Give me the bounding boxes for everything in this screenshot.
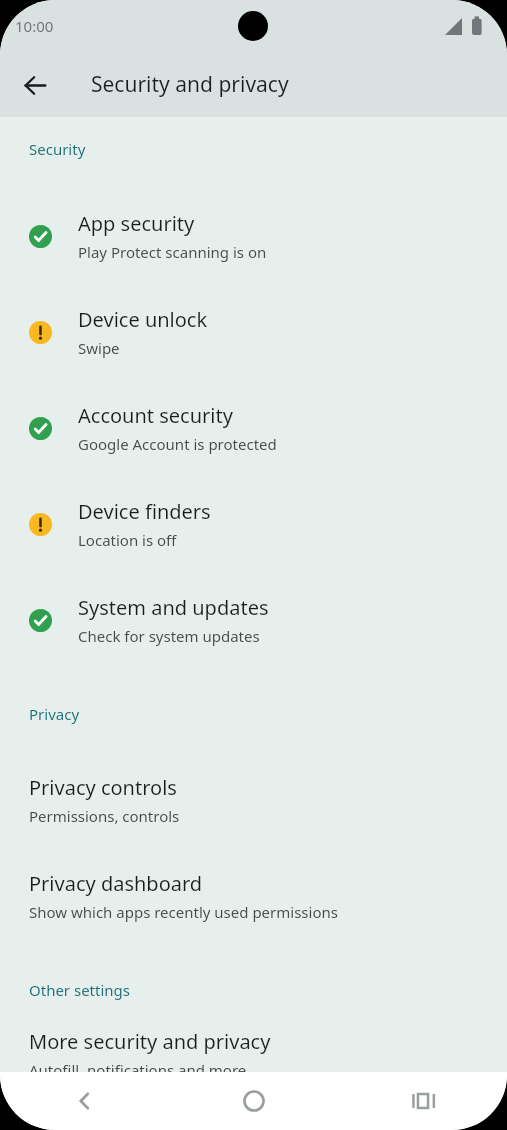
staticText: Location is off [78, 530, 177, 550]
button[interactable]: Device finders [0, 476, 507, 572]
staticText: Check for system updates [78, 626, 260, 646]
staticText: Show which apps recently used permission… [29, 902, 338, 922]
staticText: Privacy controls [29, 774, 177, 801]
staticText: Autofill, notifications and more [29, 1060, 247, 1072]
staticText: Play Protect scanning is on [78, 242, 267, 262]
button[interactable]: Back [58, 1074, 112, 1128]
staticText: Device unlock [78, 306, 208, 333]
staticText: Swipe [78, 338, 120, 358]
staticText: Permissions, controls [29, 806, 180, 826]
staticText: 10:00 [15, 16, 54, 36]
staticText: System and updates [78, 594, 269, 621]
staticText: App security [78, 210, 195, 237]
button[interactable]: Privacy controls [0, 752, 507, 848]
button[interactable]: Home [227, 1074, 281, 1128]
button[interactable]: App security [0, 188, 507, 284]
staticText: Other settings [29, 980, 130, 1000]
staticText: Privacy [29, 704, 80, 724]
staticText: Device finders [78, 498, 211, 525]
button[interactable]: More security and privacy [0, 1028, 507, 1072]
staticText: Privacy dashboard [29, 870, 203, 897]
staticText: Google Account is protected [78, 434, 277, 454]
staticText: Security [29, 139, 86, 159]
staticText: Security and privacy [91, 70, 289, 99]
button[interactable]: Privacy dashboard [0, 848, 507, 944]
button[interactable]: System and updates [0, 572, 507, 668]
staticText: More security and privacy [29, 1028, 271, 1055]
staticText: Account security [78, 402, 233, 429]
button[interactable]: Account security [0, 380, 507, 476]
button[interactable]: Device unlock [0, 284, 507, 380]
button[interactable]: Navigate up [13, 63, 57, 107]
button[interactable]: Recent apps [396, 1074, 450, 1128]
